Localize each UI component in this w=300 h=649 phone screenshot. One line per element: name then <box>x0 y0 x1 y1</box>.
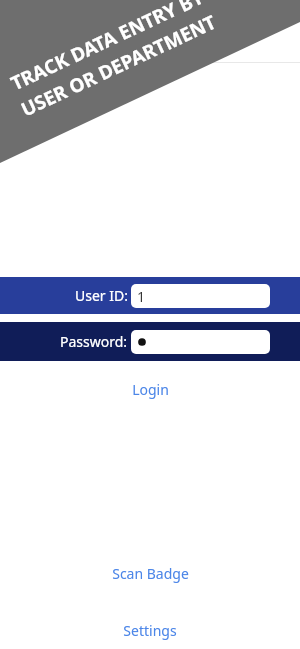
staticText: Password: <box>60 332 128 351</box>
staticText: USER OR DEPARTMENT <box>16 9 220 122</box>
staticText: Login <box>132 380 169 399</box>
staticText: User ID: <box>75 286 128 305</box>
staticText: Scan Badge <box>112 564 189 583</box>
staticText: TRACK DATA ENTRY BY <box>6 0 208 96</box>
button[interactable]: 1 <box>131 284 270 308</box>
staticText: Settings <box>123 621 177 640</box>
button[interactable]: Login <box>0 380 300 399</box>
button[interactable]: Scan Badge <box>0 564 300 583</box>
button[interactable] <box>131 330 270 354</box>
staticText: 1 <box>137 287 146 306</box>
button[interactable]: Settings <box>0 621 300 640</box>
